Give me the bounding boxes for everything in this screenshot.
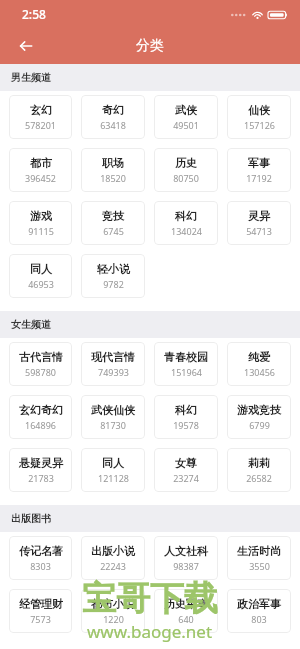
staticText: 青春校园: [164, 350, 208, 364]
staticText: 2:58: [22, 6, 46, 22]
staticText: 19578: [173, 419, 199, 431]
staticText: 古代言情: [19, 350, 63, 364]
staticText: 宝哥下载: [82, 577, 218, 620]
button[interactable]: 奇幻: [81, 95, 145, 139]
staticText: 80750: [173, 172, 199, 184]
staticText: 49501: [173, 119, 199, 131]
button[interactable]: 人文社科: [154, 536, 218, 580]
staticText: 22243: [100, 560, 126, 572]
button[interactable]: 轻小说: [81, 254, 145, 298]
staticText: 历史军事: [164, 597, 208, 611]
staticText: 现代言情: [91, 350, 135, 364]
staticText: 出版图书: [11, 512, 51, 525]
button[interactable]: 游戏竞技: [227, 395, 291, 439]
staticText: 悬疑灵异: [19, 456, 63, 470]
button[interactable]: 游戏: [9, 201, 72, 245]
staticText: 出版小说: [91, 544, 135, 558]
button[interactable]: 仙侠: [227, 95, 291, 139]
button[interactable]: 返回: [10, 30, 42, 62]
button[interactable]: 纯爱: [227, 342, 291, 386]
staticText: 都市小说: [91, 597, 135, 611]
staticText: 武侠: [175, 103, 197, 117]
staticText: 竞技: [102, 209, 124, 223]
staticText: 传记名著: [19, 544, 63, 558]
staticText: 396452: [25, 172, 56, 184]
staticText: 157126: [244, 119, 275, 131]
button[interactable]: 历史: [154, 148, 218, 192]
button[interactable]: 女尊: [154, 448, 218, 492]
button[interactable]: 武侠仙侠: [81, 395, 145, 439]
staticText: 21783: [28, 472, 54, 484]
staticText: 7573: [30, 613, 51, 625]
staticText: 3550: [249, 560, 270, 572]
staticText: 17192: [246, 172, 272, 184]
staticText: 玄幻奇幻: [19, 403, 63, 417]
button[interactable]: 传记名著: [9, 536, 72, 580]
staticText: 科幻: [175, 209, 197, 223]
button[interactable]: 科幻: [154, 395, 218, 439]
staticText: 游戏: [30, 209, 52, 223]
staticText: 仙侠: [248, 103, 270, 117]
staticText: 奇幻: [102, 103, 124, 117]
staticText: 生活时尚: [237, 544, 281, 558]
button[interactable]: 古代言情: [9, 342, 72, 386]
staticText: www.baoge.net: [87, 620, 213, 643]
button[interactable]: 灵异: [227, 201, 291, 245]
staticText: 151964: [171, 366, 202, 378]
staticText: 23274: [173, 472, 199, 484]
button[interactable]: 科幻: [154, 201, 218, 245]
staticText: 同人: [102, 456, 124, 470]
button[interactable]: 莉莉: [227, 448, 291, 492]
button[interactable]: 经管理财: [9, 589, 72, 633]
staticText: 134024: [171, 225, 202, 237]
staticText: 130456: [244, 366, 275, 378]
button[interactable]: 同人: [9, 254, 72, 298]
staticText: 分类: [136, 37, 164, 55]
button[interactable]: 竞技: [81, 201, 145, 245]
staticText: 18520: [100, 172, 126, 184]
staticText: 640: [178, 613, 194, 625]
button[interactable]: 青春校园: [154, 342, 218, 386]
staticText: 女生频道: [11, 318, 51, 331]
staticText: 598780: [25, 366, 56, 378]
staticText: 男生频道: [11, 71, 51, 84]
staticText: 98387: [173, 560, 199, 572]
staticText: 46953: [28, 278, 54, 290]
button[interactable]: 武侠: [154, 95, 218, 139]
staticText: 游戏竞技: [237, 403, 281, 417]
button[interactable]: 都市小说: [81, 589, 145, 633]
staticText: 1220: [103, 613, 124, 625]
staticText: 轻小说: [97, 262, 130, 276]
staticText: 同人: [30, 262, 52, 276]
button[interactable]: 出版小说: [81, 536, 145, 580]
staticText: 武侠仙侠: [91, 403, 135, 417]
button[interactable]: 玄幻奇幻: [9, 395, 72, 439]
button[interactable]: 玄幻: [9, 95, 72, 139]
button[interactable]: 都市: [9, 148, 72, 192]
staticText: 纯爱: [248, 350, 270, 364]
staticText: 578201: [25, 119, 56, 131]
staticText: 军事: [248, 156, 270, 170]
staticText: 26582: [246, 472, 272, 484]
staticText: 8303: [30, 560, 51, 572]
button[interactable]: 现代言情: [81, 342, 145, 386]
button[interactable]: 政治军事: [227, 589, 291, 633]
button[interactable]: 职场: [81, 148, 145, 192]
staticText: 经管理财: [19, 597, 63, 611]
staticText: 749393: [98, 366, 129, 378]
staticText: 政治军事: [237, 597, 281, 611]
staticText: 女尊: [175, 456, 197, 470]
staticText: 54713: [246, 225, 272, 237]
staticText: 莉莉: [248, 456, 270, 470]
staticText: 91115: [28, 225, 54, 237]
staticText: 121128: [98, 472, 129, 484]
button[interactable]: 悬疑灵异: [9, 448, 72, 492]
staticText: 81730: [100, 419, 126, 431]
staticText: 玄幻: [30, 103, 52, 117]
button[interactable]: 军事: [227, 148, 291, 192]
button[interactable]: 同人: [81, 448, 145, 492]
button[interactable]: 生活时尚: [227, 536, 291, 580]
staticText: 灵异: [248, 209, 270, 223]
button[interactable]: 历史军事: [154, 589, 218, 633]
staticText: 职场: [102, 156, 124, 170]
